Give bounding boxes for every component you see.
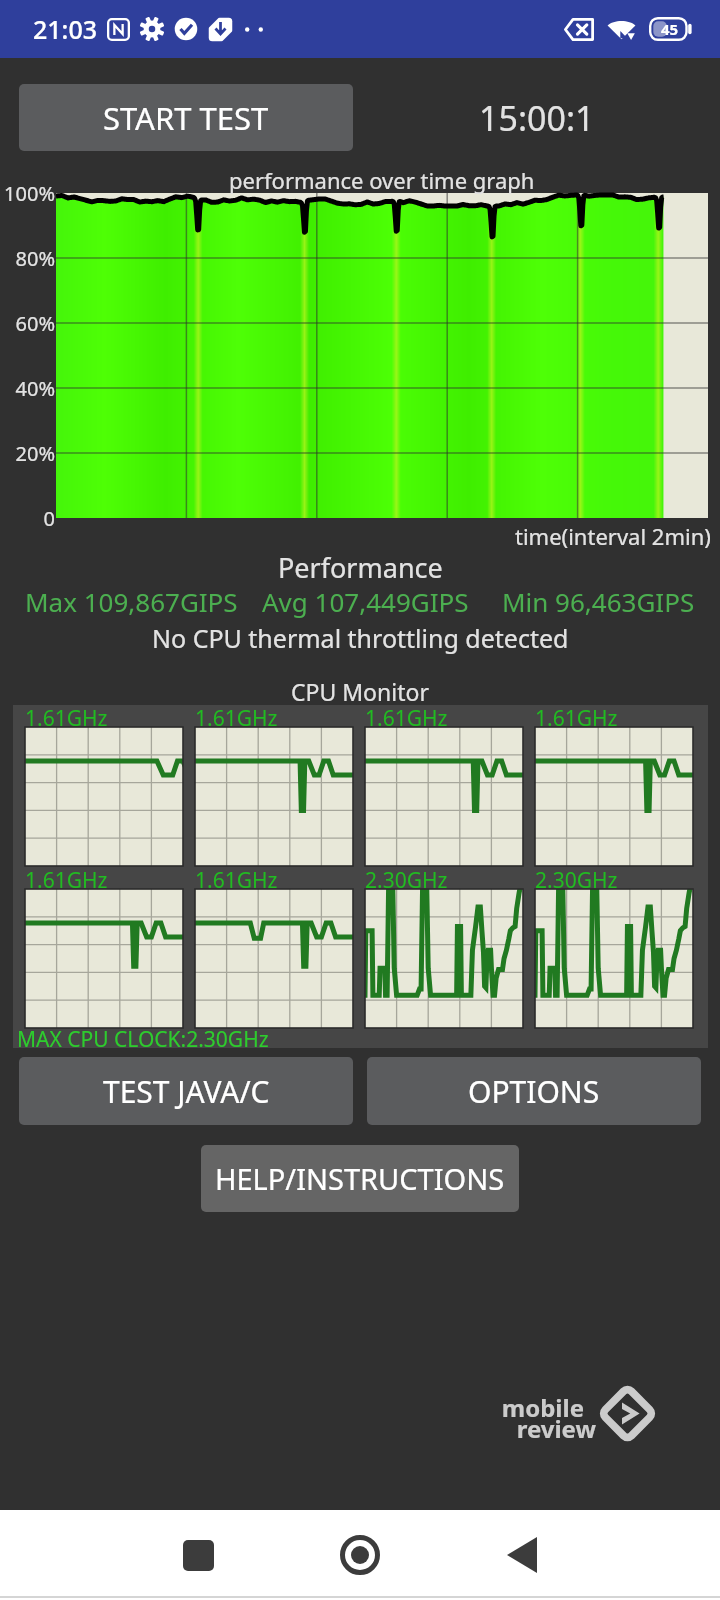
staticText: mobile	[488, 1391, 584, 1424]
staticText: review	[500, 1412, 596, 1445]
staticText: 1.61GHz	[195, 704, 278, 733]
staticText: 1.61GHz	[365, 704, 448, 733]
button[interactable]: Home	[306, 1510, 414, 1600]
staticText: 20%	[0, 440, 55, 467]
staticText: 21:03	[33, 12, 98, 46]
button[interactable]: Recent apps	[144, 1510, 252, 1600]
staticText: 80%	[0, 245, 55, 272]
staticText: 0	[0, 505, 55, 532]
staticText: 40%	[0, 375, 55, 402]
staticText: Max 109,867GIPS	[25, 584, 238, 619]
staticText: time(interval 2min)	[515, 521, 711, 551]
staticText: CPU Monitor	[291, 676, 429, 707]
button[interactable]: TEST JAVA/C	[19, 1057, 353, 1125]
button[interactable]: OPTIONS	[367, 1057, 701, 1125]
staticText: Avg 107,449GIPS	[262, 584, 469, 619]
staticText: 1.61GHz	[25, 704, 108, 733]
button[interactable]: START TEST	[19, 84, 353, 151]
staticText: 60%	[0, 310, 55, 337]
staticText: 100%	[0, 180, 55, 207]
button[interactable]: Back	[468, 1510, 576, 1600]
staticText: 2.30GHz	[365, 866, 448, 895]
staticText: Performance	[278, 549, 443, 586]
staticText: 15:00:1	[479, 95, 595, 141]
button[interactable]: HELP/INSTRUCTIONS	[201, 1145, 519, 1212]
staticText: 2.30GHz	[535, 866, 618, 895]
staticText: OPTIONS	[468, 1071, 600, 1112]
staticText: MAX CPU CLOCK:2.30GHz	[17, 1025, 269, 1054]
staticText: 1.61GHz	[535, 704, 618, 733]
staticText: START TEST	[103, 97, 269, 139]
staticText: 1.61GHz	[25, 866, 108, 895]
staticText: TEST JAVA/C	[103, 1071, 270, 1112]
staticText: performance over time graph	[229, 165, 535, 195]
staticText: No CPU thermal throttling detected	[152, 621, 569, 655]
staticText: 1.61GHz	[195, 866, 278, 895]
staticText: HELP/INSTRUCTIONS	[215, 1159, 505, 1198]
staticText: Min 96,463GIPS	[502, 584, 695, 619]
staticText: 45	[661, 19, 679, 39]
